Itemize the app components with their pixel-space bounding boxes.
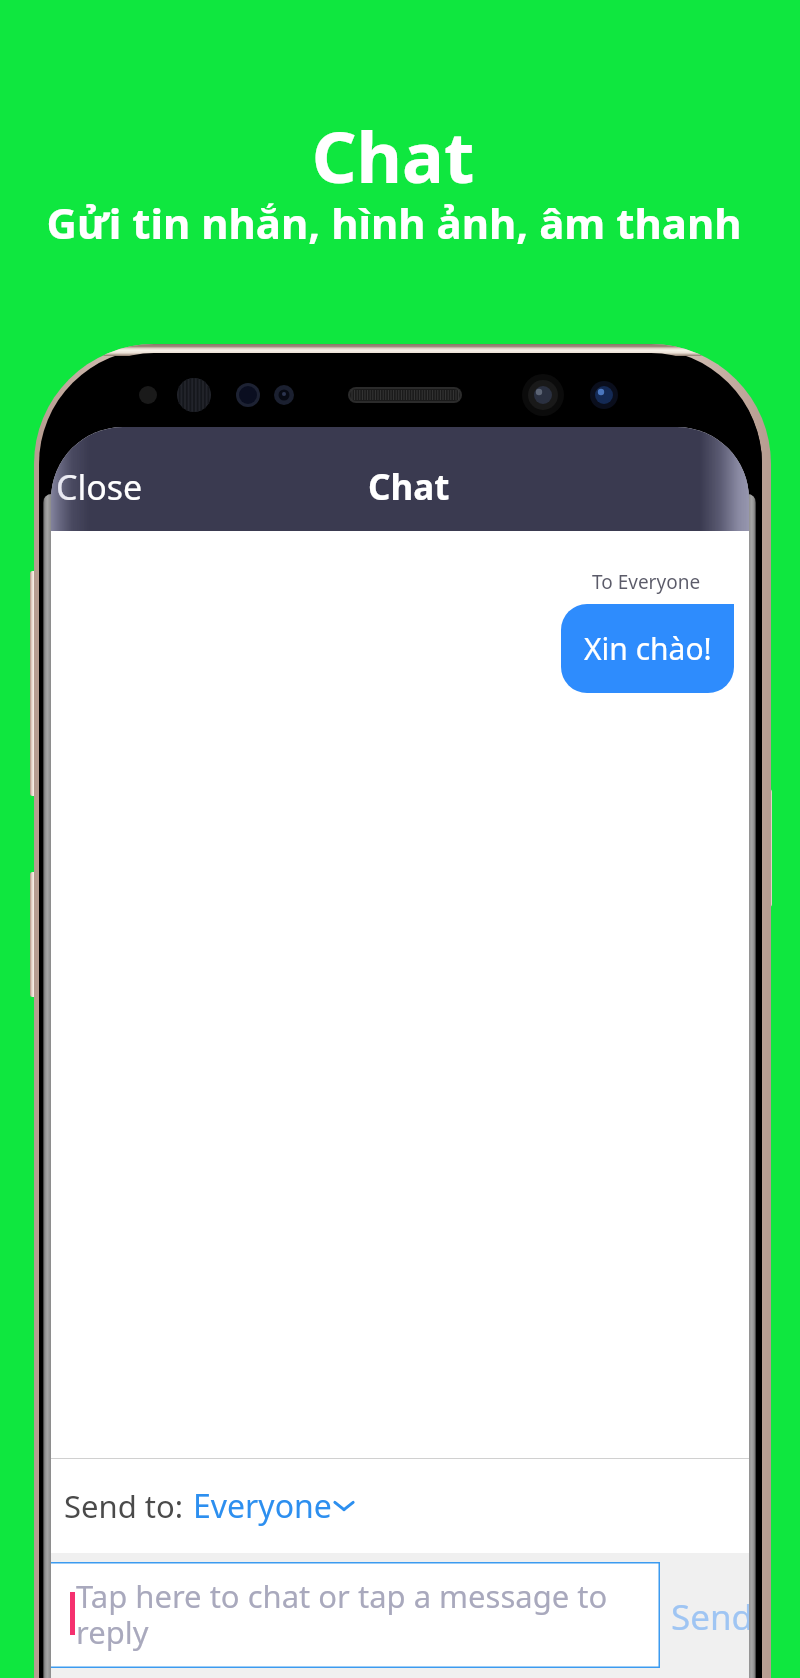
staticText: Gửi tin nhắn, hình ảnh, âm thanh [0, 194, 794, 251]
staticText: To Everyone [592, 569, 701, 595]
staticText: Chat [0, 108, 793, 203]
button[interactable]: Tap here to chat or tap a message to rep… [51, 1562, 660, 1668]
button[interactable]: Xin chào! [561, 604, 734, 693]
staticText: Everyone [193, 1484, 332, 1528]
staticText: Chat [368, 463, 450, 511]
staticText: Xin chào! [584, 628, 712, 669]
staticText: Send [671, 1593, 749, 1641]
staticText: Tap here to chat or tap a message to rep… [76, 1575, 621, 1653]
staticText: Close [56, 464, 143, 510]
button[interactable]: Close [51, 454, 159, 520]
button[interactable]: Send [665, 1587, 749, 1647]
staticText: Send to: [64, 1485, 184, 1527]
button[interactable]: Everyone [193, 1484, 356, 1528]
